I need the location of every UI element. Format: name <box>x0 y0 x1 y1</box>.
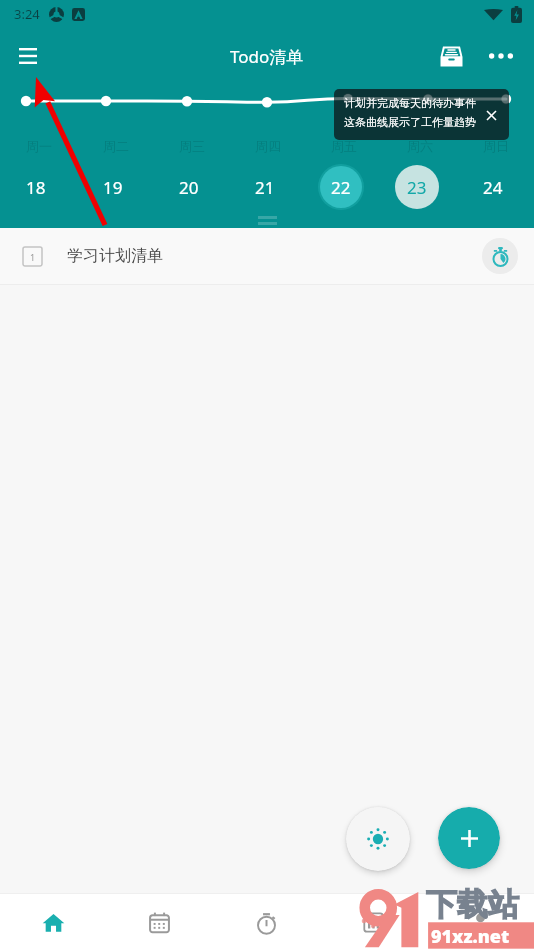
staticText: 周五 <box>331 138 357 154</box>
staticText: 周三 <box>179 138 205 154</box>
staticText: 19 <box>103 176 123 199</box>
button[interactable]: 20 <box>167 165 211 209</box>
button[interactable]: Me <box>427 894 534 950</box>
staticText: 这条曲线展示了工作量趋势 <box>344 115 476 129</box>
staticText: 周六 <box>407 138 433 154</box>
button[interactable]: 18 <box>14 165 58 209</box>
staticText: 周四 <box>255 138 281 154</box>
button[interactable]: Focus timer <box>346 807 410 871</box>
button[interactable]: 23 <box>395 165 439 209</box>
button[interactable]: 21 <box>243 165 287 209</box>
button[interactable]: Home <box>0 894 106 950</box>
button[interactable]: Open navigation drawer <box>5 33 51 79</box>
button[interactable]: 19 <box>91 165 135 209</box>
button[interactable]: Statistics <box>320 894 427 950</box>
staticText: Todo清单 <box>230 45 304 68</box>
button[interactable]: Archive box <box>428 33 474 79</box>
staticText: 下载站 <box>426 885 519 924</box>
staticText: 1 <box>30 251 36 263</box>
staticText: 18 <box>26 176 46 199</box>
button[interactable]: Add task <box>438 807 500 869</box>
staticText: 24 <box>483 176 503 199</box>
staticText: 周一 <box>26 138 52 154</box>
button[interactable]: 22 <box>318 164 364 210</box>
button[interactable]: 24 <box>471 165 515 209</box>
staticText: 22 <box>331 176 351 199</box>
button[interactable]: 1 <box>0 228 534 284</box>
staticText: 计划并完成每天的待办事件 <box>344 96 476 110</box>
staticText: 周日 <box>483 138 509 154</box>
button[interactable]: Calendar <box>106 894 213 950</box>
button[interactable]: More options <box>478 33 524 79</box>
staticText: 3:24 <box>14 5 40 23</box>
staticText: 91xz.net <box>431 924 510 949</box>
staticText: 20 <box>179 176 199 199</box>
staticText: 21 <box>255 176 275 199</box>
button[interactable]: Start focus timer <box>482 238 518 274</box>
button[interactable]: Close tip <box>477 101 505 129</box>
button[interactable]: Focus timer <box>213 894 320 950</box>
staticText: 23 <box>407 176 427 199</box>
staticText: 周二 <box>103 138 129 154</box>
staticText: 学习计划清单 <box>67 246 163 266</box>
